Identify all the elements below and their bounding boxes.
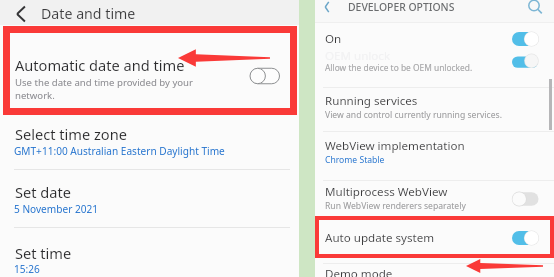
button[interactable]: OEM unlock toggle [512,54,540,69]
staticText: network. [15,89,55,102]
button[interactable]: Back [317,0,337,17]
button[interactable] [315,50,554,76]
staticText: Running services [325,93,418,109]
button[interactable] [0,237,298,277]
staticText: Select time zone [15,124,127,144]
staticText: Allow the device to be OEM unlocked. [325,62,473,73]
staticText: 5 November 2021 [14,202,99,216]
staticText: Use the date and time provided by your [15,76,194,89]
staticText: Run WebView renderers separately [325,200,466,212]
button[interactable] [0,32,294,108]
button[interactable]: Automatic date and time toggle [250,66,282,86]
staticText: Automatic date and time [15,55,185,75]
staticText: OEM unlock [325,48,391,64]
button[interactable]: Toggle [512,191,540,207]
button[interactable] [315,181,554,215]
staticText: 15:26 [14,262,40,276]
staticText: Set time [15,243,72,263]
button[interactable] [315,228,554,252]
staticText: Set date [15,182,71,202]
staticText: Demo mode [325,266,393,277]
staticText: Auto update system [325,230,435,246]
button[interactable] [0,176,298,230]
button[interactable]: Search [524,0,544,16]
button[interactable]: Toggle [512,31,540,47]
button[interactable] [315,263,554,277]
button[interactable] [315,28,554,52]
staticText: On [325,31,342,47]
staticText: DEVELOPER OPTIONS [348,0,455,14]
button[interactable]: Toggle [512,230,540,246]
staticText: Date and time [41,4,136,23]
button[interactable]: Back [9,2,33,26]
button[interactable] [0,118,298,172]
staticText: Chrome Stable [325,154,385,166]
staticText: GMT+11:00 Australian Eastern Daylight Ti… [14,144,225,158]
button[interactable] [315,91,554,125]
staticText: WebView implementation [325,138,465,154]
staticText: Multiprocess WebView [325,184,448,200]
staticText: View and control currently running servi… [325,109,502,121]
button[interactable] [315,135,554,169]
